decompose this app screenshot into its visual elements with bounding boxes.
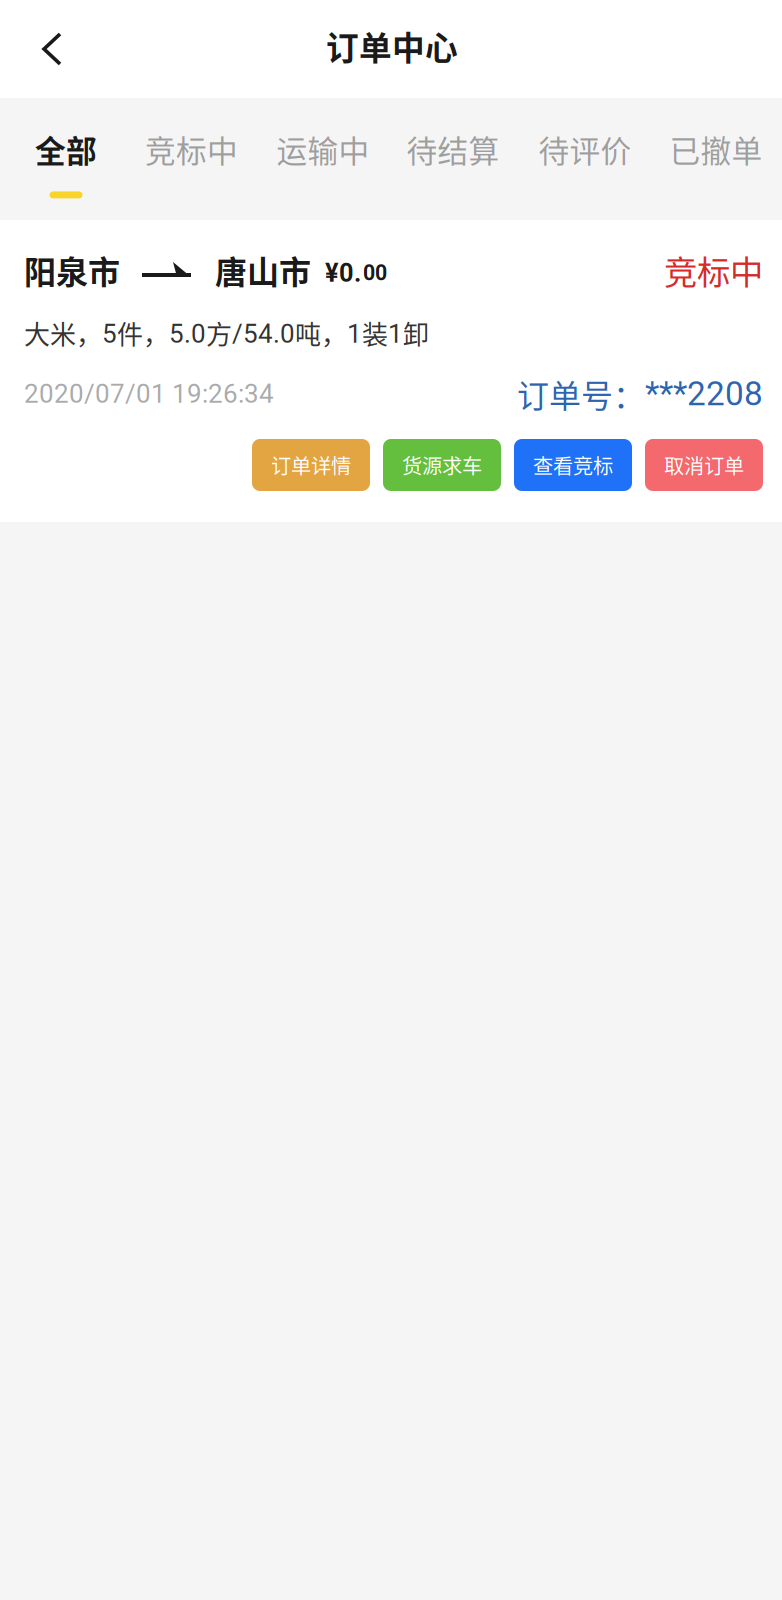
staticText: 竞标中 [145,127,238,171]
button[interactable]: 已撤单 [661,98,771,220]
staticText: 00 [363,260,387,285]
staticText: 订单号： [517,371,645,417]
button[interactable]: 查看竞标 [514,439,632,491]
button[interactable]: 订单详情 [252,439,370,491]
button[interactable]: 待结算 [398,98,508,220]
staticText: ***2208 [645,374,763,413]
button[interactable]: 竞标中 [137,98,246,220]
staticText: ¥0. [325,258,361,288]
button[interactable]: 阳泉市 [24,248,763,417]
button[interactable]: Back [0,0,104,98]
staticText: 全部 [35,127,97,171]
staticText: 唐山市 [215,247,311,293]
staticText: 大米，5件，5.0方/54.0吨，1装1卸 [24,314,429,352]
staticText: 已撤单 [669,127,762,171]
staticText: 订单中心 [326,22,458,70]
button[interactable]: 全部 [14,98,118,220]
button[interactable]: 运输中 [268,98,378,220]
button[interactable]: 取消订单 [645,439,763,491]
staticText: 阳泉市 [24,247,120,293]
button[interactable]: 待评价 [530,98,640,220]
staticText: 运输中 [276,127,369,171]
staticText: 竞标中 [664,246,763,294]
staticText: 2020/07/01 19:26:34 [24,379,274,409]
staticText: 取消订单 [664,450,744,480]
staticText: 订单详情 [271,450,351,480]
staticText: 查看竞标 [533,450,613,480]
staticText: 待评价 [538,127,631,171]
button[interactable]: 货源求车 [383,439,501,491]
staticText: 待结算 [406,127,499,171]
staticText: 货源求车 [402,450,482,480]
